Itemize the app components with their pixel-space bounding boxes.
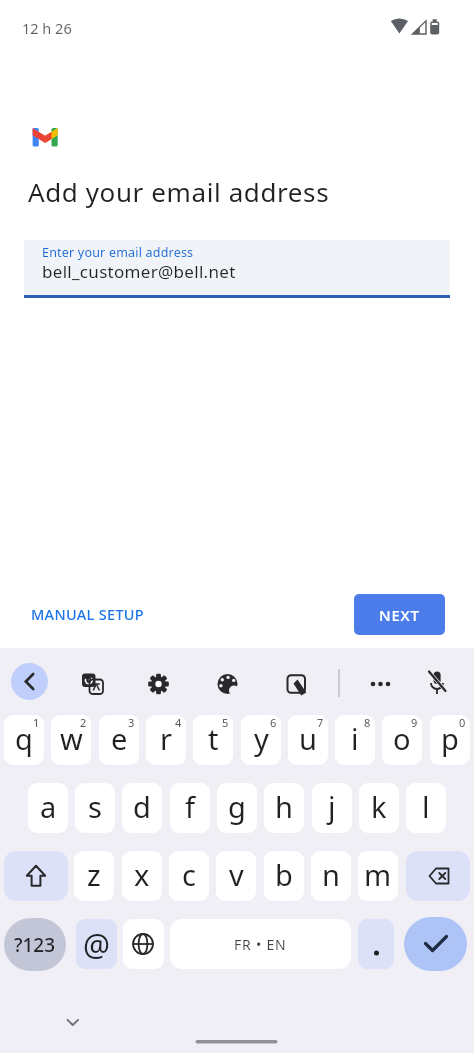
staticText: x (134, 855, 150, 894)
button[interactable]: FR • EN (170, 919, 351, 969)
button[interactable]: k (359, 783, 399, 833)
button[interactable]: g (217, 783, 257, 833)
button[interactable] (123, 919, 164, 969)
staticText: n (322, 855, 340, 894)
button[interactable]: z (74, 851, 114, 901)
button[interactable]: x (122, 851, 162, 901)
button[interactable] (362, 666, 398, 702)
staticText: 3 (128, 715, 135, 730)
staticText: 0 (459, 715, 466, 730)
button[interactable] (404, 917, 467, 971)
staticText: q (15, 719, 33, 758)
staticText: Enter your email address (42, 244, 194, 261)
staticText: y (254, 719, 269, 758)
staticText: 1 (33, 715, 40, 730)
staticText: b (275, 855, 293, 894)
button[interactable]: MANUAL SETUP (17, 597, 157, 631)
staticText: FR • EN (234, 935, 287, 954)
staticText: NEXT (379, 605, 420, 625)
button[interactable] (209, 666, 245, 702)
button[interactable]: n (311, 851, 351, 901)
staticText: o (393, 719, 411, 758)
button[interactable]: r (146, 715, 186, 765)
button[interactable] (358, 919, 394, 969)
button[interactable]: i (335, 715, 375, 765)
staticText: s (88, 787, 102, 826)
staticText: a (40, 787, 57, 826)
button[interactable]: l (406, 783, 446, 833)
button[interactable]: NEXT (354, 594, 445, 635)
staticText: g (228, 787, 246, 826)
button[interactable] (11, 663, 48, 700)
staticText: u (299, 719, 317, 758)
button[interactable]: v (216, 851, 256, 901)
staticText: r (160, 719, 172, 758)
button[interactable]: m (358, 851, 398, 901)
staticText: 8 (364, 715, 371, 730)
button[interactable] (278, 666, 314, 702)
button[interactable]: p (430, 715, 470, 765)
staticText: bell_customer@bell.net (42, 260, 236, 283)
staticText: @ (83, 924, 110, 965)
button[interactable]: e (99, 715, 139, 765)
button[interactable]: j (312, 783, 352, 833)
button[interactable]: f (170, 783, 210, 833)
button[interactable]: d (122, 783, 162, 833)
staticText: i (351, 719, 359, 758)
staticText: 2 (80, 715, 87, 730)
button[interactable]: s (75, 783, 115, 833)
staticText: 7 (317, 715, 324, 730)
staticText: l (422, 787, 430, 826)
button[interactable]: o (382, 715, 422, 765)
staticText: v (229, 855, 244, 894)
button[interactable]: c (169, 851, 209, 901)
staticText: h (275, 787, 293, 826)
button[interactable]: ?123 (4, 918, 66, 971)
staticText: j (328, 787, 336, 826)
button[interactable]: Enter your email address (24, 240, 450, 298)
staticText: e (111, 719, 128, 758)
staticText: 12 h 26 (22, 18, 72, 38)
button[interactable]: q (4, 715, 44, 765)
button[interactable] (4, 851, 68, 901)
staticText: k (371, 787, 387, 826)
staticText: p (441, 719, 459, 758)
button[interactable] (140, 666, 176, 702)
button[interactable]: h (264, 783, 304, 833)
staticText: w (60, 719, 83, 758)
staticText: 9 (411, 715, 418, 730)
staticText: Add your email address (28, 174, 330, 209)
button[interactable] (74, 666, 110, 702)
staticText: t (208, 719, 219, 758)
staticText: d (133, 787, 151, 826)
staticText: m (364, 855, 392, 894)
button[interactable]: t (193, 715, 233, 765)
staticText: 6 (270, 715, 277, 730)
staticText: z (87, 855, 101, 894)
button[interactable]: w (51, 715, 91, 765)
button[interactable] (406, 851, 470, 901)
button[interactable]: y (241, 715, 281, 765)
staticText: 4 (175, 715, 182, 730)
staticText: f (185, 787, 195, 826)
button[interactable] (419, 666, 455, 702)
staticText: c (182, 855, 196, 894)
staticText: MANUAL SETUP (31, 604, 144, 624)
button[interactable]: @ (76, 919, 117, 969)
button[interactable]: a (28, 783, 68, 833)
button[interactable]: b (264, 851, 304, 901)
staticText: 5 (222, 715, 229, 730)
staticText: ?123 (14, 932, 56, 958)
button[interactable]: u (288, 715, 328, 765)
